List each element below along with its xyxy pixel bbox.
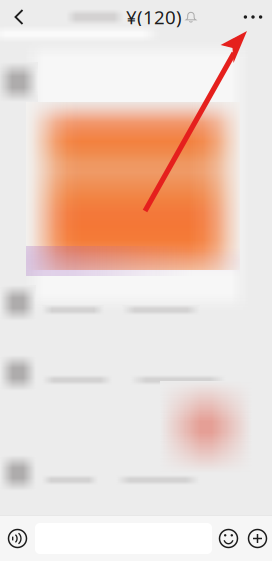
staticText: ¥(120)	[126, 5, 182, 29]
button[interactable]: More	[234, 0, 272, 34]
button[interactable]: Voice input	[0, 516, 35, 561]
button[interactable]: More options	[243, 516, 272, 561]
button[interactable]: Emoji	[214, 516, 243, 561]
button[interactable]: Back	[0, 0, 38, 34]
